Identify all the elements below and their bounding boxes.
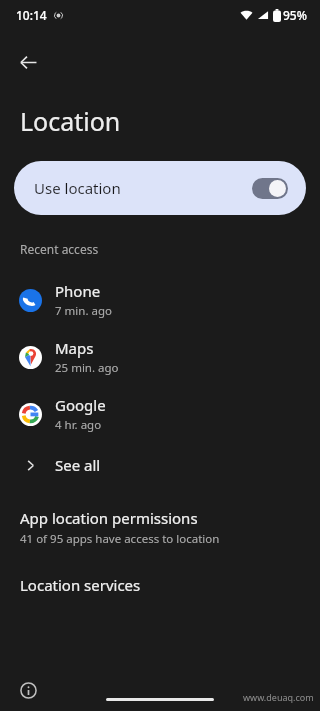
button[interactable]: Google (0, 385, 320, 442)
button[interactable]: Maps (0, 328, 320, 385)
staticText: Google (55, 395, 106, 415)
button[interactable]: Location services (0, 575, 320, 595)
staticText: Maps (55, 338, 94, 358)
staticText: Use location (34, 178, 252, 198)
button[interactable]: App location permissions (0, 502, 320, 553)
staticText: See all (55, 455, 101, 475)
staticText: 10:14 (16, 7, 47, 23)
staticText: www.deuaq.com (243, 691, 314, 703)
button[interactable]: Info (14, 676, 42, 704)
staticText: Phone (55, 281, 101, 301)
button[interactable]: Back (8, 42, 48, 82)
staticText: 4 hr. ago (55, 417, 102, 433)
button[interactable]: See all (0, 442, 320, 488)
button[interactable]: Phone (0, 271, 320, 328)
staticText: 95% (283, 7, 307, 23)
staticText: Recent access (20, 241, 99, 257)
button[interactable]: Use location (14, 161, 306, 215)
staticText: App location permissions (20, 508, 198, 528)
staticText: 25 min. ago (55, 360, 119, 376)
staticText: Location (20, 104, 121, 138)
staticText: 41 of 95 apps have access to location (20, 531, 220, 547)
staticText: 7 min. ago (55, 303, 112, 319)
